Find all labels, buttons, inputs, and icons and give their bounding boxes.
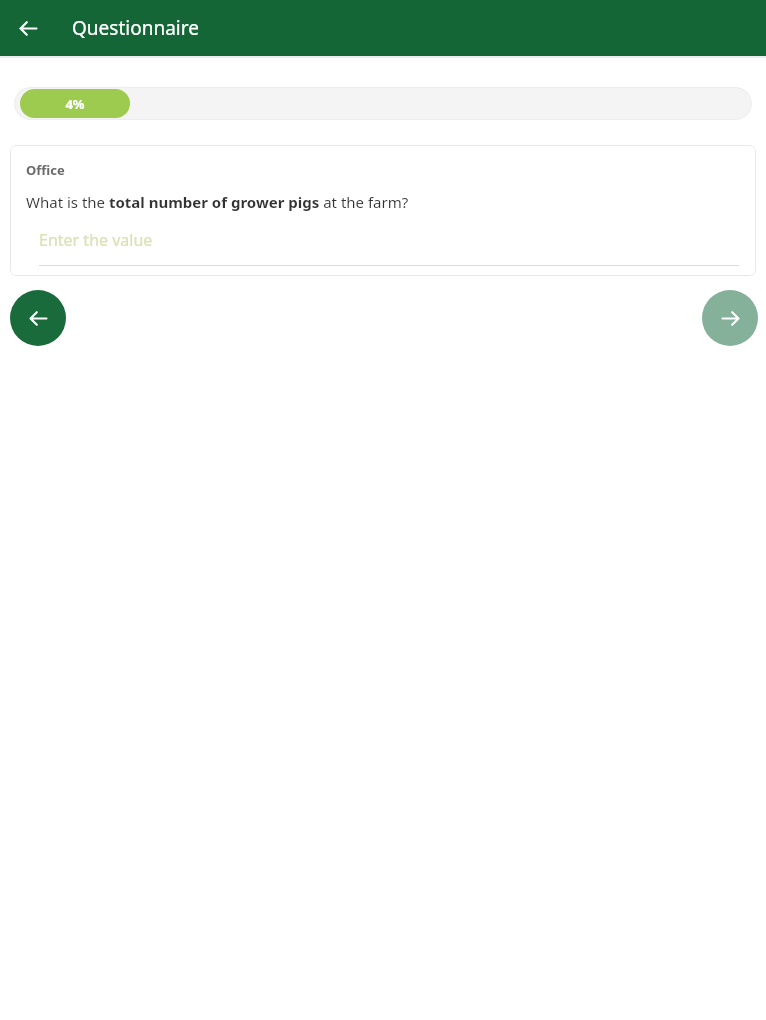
button[interactable]: Office xyxy=(10,145,756,276)
staticText: 4% xyxy=(65,95,85,113)
button[interactable]: Next question xyxy=(702,290,758,346)
staticText: What is the total number of grower pigs … xyxy=(26,192,409,212)
button[interactable]: Back xyxy=(8,8,48,48)
staticText: Enter the value xyxy=(39,229,153,251)
button[interactable]: Previous question xyxy=(10,290,66,346)
staticText: Office xyxy=(26,161,65,179)
button[interactable]: 4% xyxy=(14,87,752,120)
staticText: Questionnaire xyxy=(72,15,199,41)
